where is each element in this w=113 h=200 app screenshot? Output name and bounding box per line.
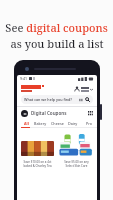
- staticText: Digital Coupons: [31, 110, 67, 116]
- staticText: Save $10.00 on a 4ct baked & Charley Tea: [23, 160, 52, 168]
- button[interactable]: Save $5.00 on any Select Skin Care: [58, 132, 94, 168]
- staticText: Save $5.00 on any Select Skin Care: [64, 160, 89, 168]
- button[interactable]: Coupons: [21, 110, 28, 117]
- staticText: Cheese: [51, 121, 64, 126]
- other: Search: [85, 97, 90, 102]
- button[interactable]: Bakery: [32, 119, 49, 127]
- button[interactable]: Pro: [81, 119, 97, 127]
- button[interactable]: Grid view: [88, 111, 93, 116]
- staticText: Pro: [86, 121, 92, 126]
- staticText: What can we help you find?: [24, 97, 72, 102]
- staticText: All: [24, 121, 29, 126]
- staticText: 9:41: [20, 76, 27, 81]
- staticText: as you build a list: [10, 36, 104, 51]
- button[interactable]: Dairy: [65, 119, 81, 127]
- staticText: Dairy: [68, 121, 78, 126]
- button[interactable]: Save $10.00 on a 4ct baked & Charley Tea: [20, 132, 55, 168]
- button[interactable]: Store logo: [21, 85, 44, 92]
- button[interactable]: Account and rewards: [74, 86, 93, 92]
- staticText: See digital coupons: [5, 20, 108, 35]
- button[interactable]: All: [21, 119, 32, 127]
- button[interactable]: What can we help you find?: [21, 95, 93, 104]
- button[interactable]: Cheese: [49, 119, 65, 127]
- staticText: Bakery: [34, 121, 47, 126]
